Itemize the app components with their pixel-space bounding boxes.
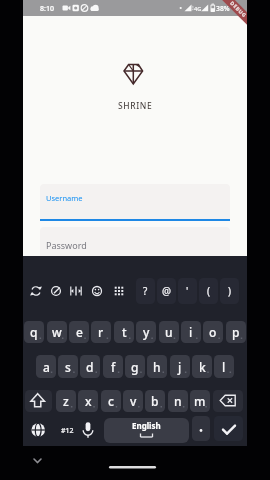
button[interactable]: ' xyxy=(178,278,197,304)
button[interactable]: v xyxy=(123,390,143,412)
button[interactable]: q xyxy=(24,321,44,343)
button[interactable] xyxy=(67,282,86,301)
button[interactable] xyxy=(192,416,210,441)
staticText: a xyxy=(43,359,50,375)
button[interactable]: l xyxy=(214,355,234,378)
staticText: DEBUG xyxy=(228,0,247,20)
staticText: 4G xyxy=(194,5,202,12)
button[interactable]: ( xyxy=(199,278,218,304)
staticText: o xyxy=(209,324,217,340)
button[interactable]: r xyxy=(91,321,111,343)
staticText: q xyxy=(30,324,38,340)
button[interactable]: ) xyxy=(220,278,239,304)
staticText: v xyxy=(130,393,137,409)
staticText: g xyxy=(131,359,139,375)
button[interactable]: c xyxy=(101,390,121,412)
button[interactable]: x xyxy=(78,390,98,412)
staticText: i xyxy=(189,324,193,340)
button[interactable] xyxy=(28,418,49,443)
button[interactable]: g xyxy=(125,355,145,378)
staticText: 38% xyxy=(216,4,230,13)
staticText: e xyxy=(76,324,83,340)
button[interactable]: k xyxy=(192,355,212,378)
staticText: Username xyxy=(46,193,83,203)
staticText: ' xyxy=(186,284,189,298)
staticText: f xyxy=(111,359,116,375)
button[interactable]: i xyxy=(181,321,201,343)
button[interactable]: b xyxy=(145,390,165,412)
button[interactable]: d xyxy=(80,355,100,378)
staticText: u xyxy=(165,324,173,340)
staticText: z xyxy=(63,393,69,409)
staticText: b xyxy=(151,393,159,409)
staticText: w xyxy=(52,324,62,340)
staticText: SHRINE xyxy=(118,100,153,112)
button[interactable]: z xyxy=(56,390,76,412)
button[interactable]: j xyxy=(170,355,190,378)
staticText: x xyxy=(85,393,92,409)
button[interactable] xyxy=(213,390,243,412)
button[interactable]: y xyxy=(136,321,156,343)
button[interactable] xyxy=(28,452,47,469)
button[interactable] xyxy=(214,416,243,441)
button[interactable]: #12 xyxy=(58,418,77,443)
button[interactable]: p xyxy=(226,321,246,343)
button[interactable]: s xyxy=(58,355,78,378)
button[interactable]: u xyxy=(159,321,179,343)
button[interactable] xyxy=(25,390,52,412)
button[interactable]: n xyxy=(168,390,188,412)
staticText: m xyxy=(194,393,206,409)
button[interactable]: ? xyxy=(136,278,155,304)
button[interactable]: Password xyxy=(40,227,230,256)
staticText: h xyxy=(153,359,161,375)
button[interactable]: w xyxy=(47,321,67,343)
button[interactable]: m xyxy=(190,390,210,412)
staticText: ? xyxy=(143,284,148,298)
staticText: ) xyxy=(228,284,231,298)
staticText: l xyxy=(222,359,226,375)
button[interactable] xyxy=(47,282,66,301)
button[interactable]: @ xyxy=(157,278,176,304)
button[interactable]: a xyxy=(36,355,56,378)
staticText: d xyxy=(86,359,94,375)
button[interactable] xyxy=(110,282,129,301)
staticText: #12 xyxy=(61,426,74,436)
staticText: k xyxy=(199,359,206,375)
staticText: r xyxy=(98,324,104,340)
staticText: c xyxy=(108,393,114,409)
staticText: Password xyxy=(46,239,87,251)
staticText: j xyxy=(178,359,182,375)
staticText: t xyxy=(122,324,127,340)
staticText: n xyxy=(174,393,182,409)
button[interactable]: f xyxy=(103,355,123,378)
button[interactable]: o xyxy=(203,321,223,343)
button[interactable]: e xyxy=(69,321,89,343)
staticText: s xyxy=(65,359,71,375)
staticText: y xyxy=(143,324,150,340)
button[interactable] xyxy=(88,282,107,301)
button[interactable] xyxy=(78,418,99,443)
button[interactable]: t xyxy=(114,321,134,343)
staticText: @ xyxy=(162,284,171,298)
staticText: ( xyxy=(207,284,210,298)
staticText: p xyxy=(232,324,240,340)
button[interactable] xyxy=(104,418,189,443)
button[interactable]: Username xyxy=(40,184,230,221)
staticText: English xyxy=(132,420,161,431)
staticText: 8:10 xyxy=(40,4,54,14)
button[interactable]: h xyxy=(147,355,167,378)
button[interactable] xyxy=(27,282,46,301)
